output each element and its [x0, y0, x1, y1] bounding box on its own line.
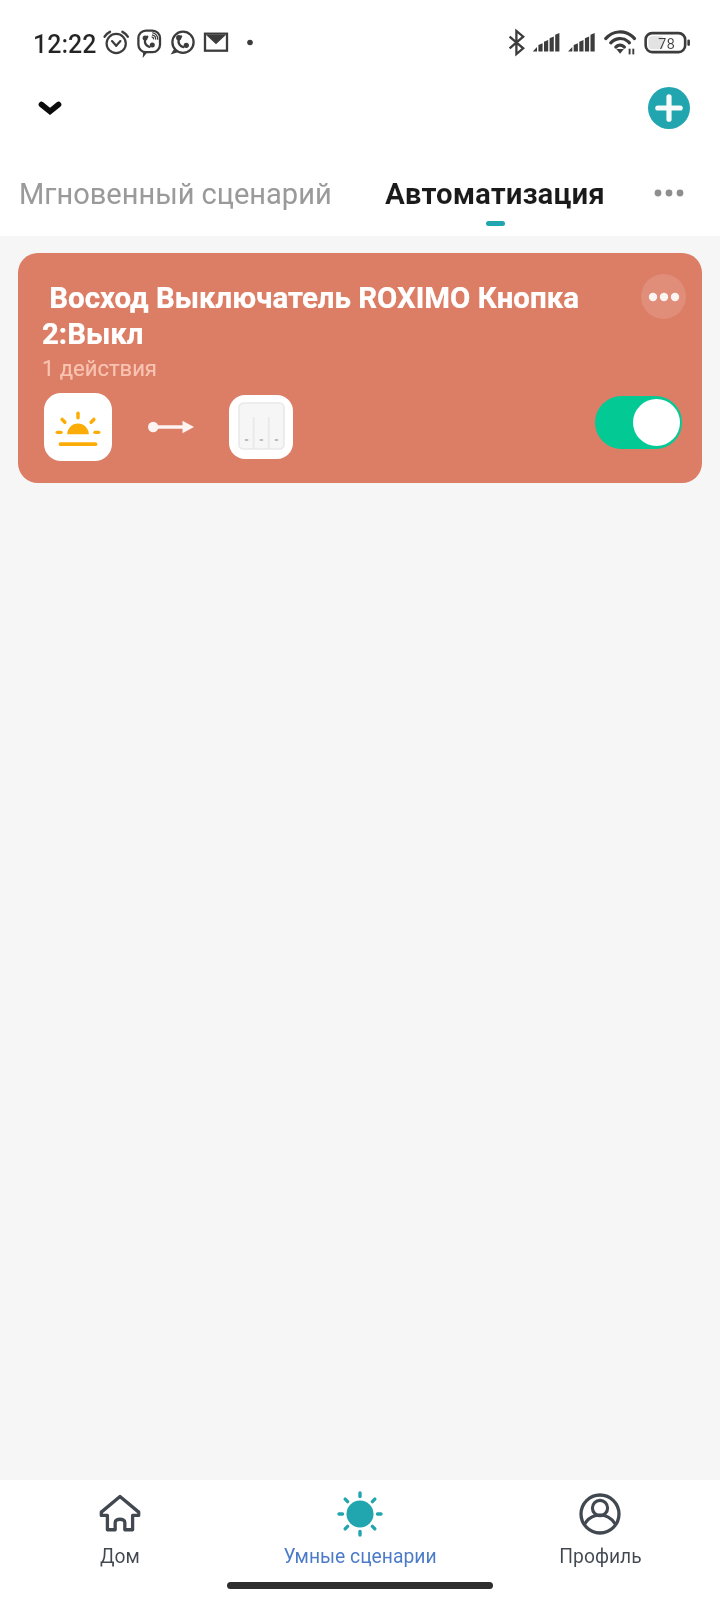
- button[interactable]: Умные сценарии: [240, 1480, 480, 1581]
- button[interactable]: Дом: [0, 1480, 240, 1581]
- button[interactable]: Профиль: [480, 1480, 720, 1581]
- staticText: 12:22: [33, 30, 97, 59]
- staticText: 78: [658, 35, 675, 53]
- button[interactable]: Toggle automation: [595, 396, 682, 449]
- staticText: Автоматизация: [385, 177, 605, 212]
- staticText: 1 действия: [42, 356, 157, 382]
- button[interactable]: Add scene: [648, 87, 690, 129]
- button[interactable]: Восход Выключатель ROXIMO Кнопка 2:Выкл: [18, 253, 702, 483]
- button[interactable]: More options: [645, 169, 692, 216]
- button[interactable]: Scene options: [641, 274, 686, 319]
- staticText: Профиль: [559, 1545, 642, 1568]
- button[interactable]: Мгновенный сценарий: [0, 160, 350, 236]
- staticText: Умные сценарии: [283, 1545, 437, 1568]
- staticText: Дом: [100, 1545, 140, 1568]
- staticText: Мгновенный сценарий: [19, 177, 332, 211]
- button[interactable]: Автоматизация: [355, 160, 635, 236]
- staticText: Восход Выключатель ROXIMO Кнопка 2:Выкл: [42, 281, 602, 351]
- button[interactable]: Select home: [27, 85, 73, 131]
